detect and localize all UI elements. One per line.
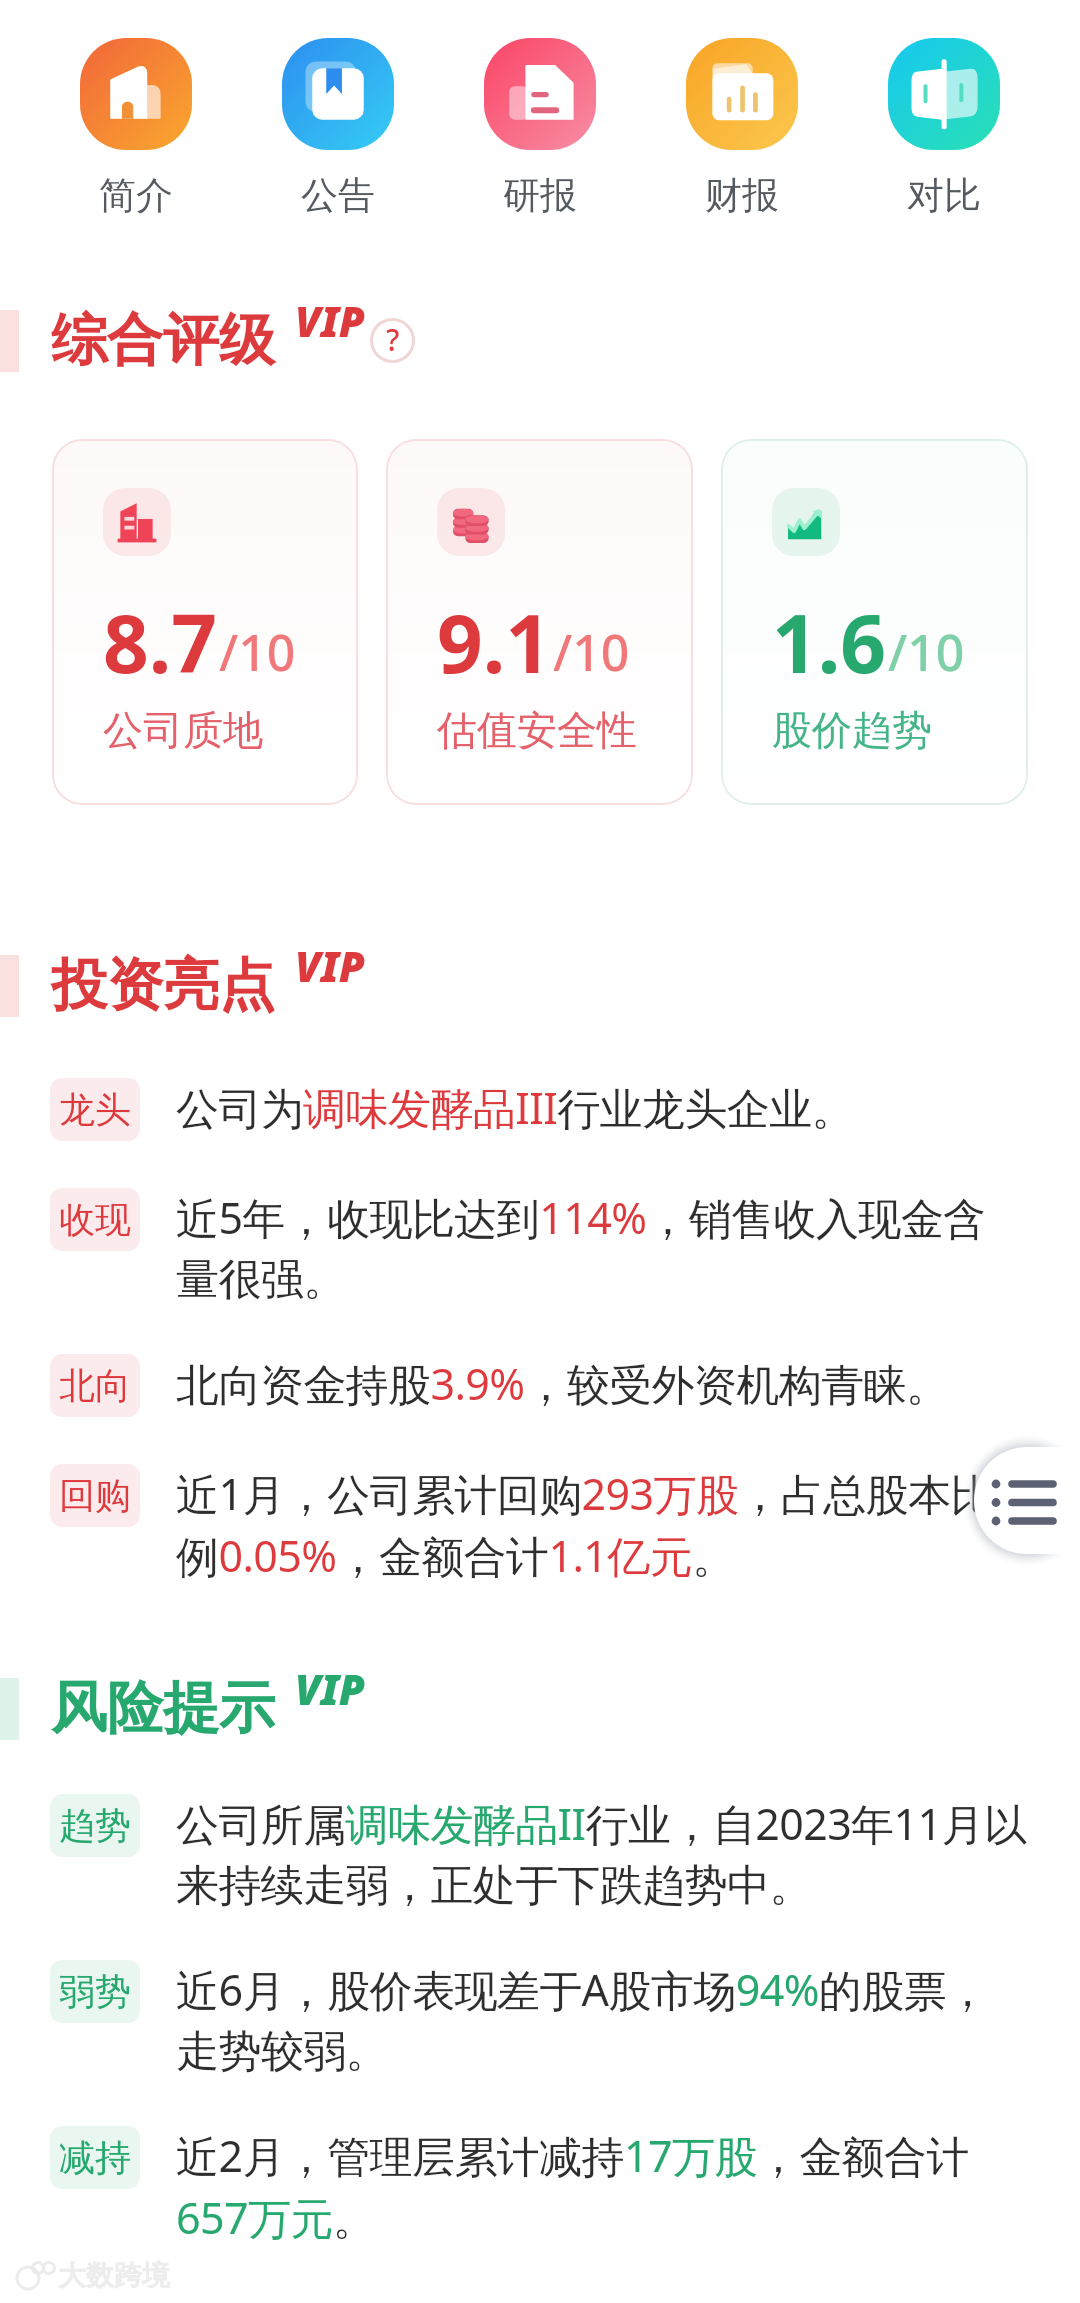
staticText: 风险提示 bbox=[51, 1673, 275, 1744]
staticText: 估值安全性 bbox=[437, 705, 637, 755]
staticText: 近1月，公司累计回购293万股，占总股本比 例0.05%，金额合计1.1亿元。 bbox=[176, 1464, 993, 1585]
staticText: /10 bbox=[553, 618, 630, 686]
button[interactable]: 对比 bbox=[888, 38, 1000, 219]
button[interactable]: 8.7 bbox=[52, 439, 358, 805]
button[interactable]: 弱势 bbox=[50, 1960, 1066, 2079]
button[interactable]: 龙头 bbox=[50, 1078, 1066, 1141]
staticText: /10 bbox=[219, 618, 296, 686]
staticText: 公司质地 bbox=[103, 705, 263, 755]
staticText: 近5年，收现比达到114%，销售收入现金含 量很强。 bbox=[176, 1188, 986, 1307]
staticText: 龙头 bbox=[59, 1087, 131, 1132]
button[interactable]: 北向 bbox=[50, 1354, 1066, 1417]
staticText: 公司所属调味发酵品II行业，自2023年11月以 来持续走弱，正处于下跌趋势中。 bbox=[176, 1794, 1027, 1913]
staticText: 北向 bbox=[59, 1363, 131, 1408]
button[interactable]: 回购 bbox=[50, 1464, 1066, 1585]
button[interactable]: 简介 bbox=[80, 38, 192, 219]
staticText: 9.1 bbox=[437, 587, 551, 696]
button[interactable]: 趋势 bbox=[50, 1794, 1066, 1913]
staticText: 趋势 bbox=[59, 1803, 131, 1848]
button[interactable]: Help bbox=[370, 318, 415, 363]
button[interactable]: 公告 bbox=[282, 38, 394, 219]
button[interactable]: 9.1 bbox=[386, 439, 693, 805]
staticText: 收现 bbox=[59, 1197, 131, 1242]
staticText: VIP bbox=[295, 292, 365, 349]
staticText: VIP bbox=[295, 1660, 365, 1717]
button[interactable]: Menu bbox=[974, 1447, 1080, 1554]
staticText: VIP bbox=[295, 937, 365, 994]
button[interactable]: 收现 bbox=[50, 1188, 1066, 1307]
button[interactable]: 研报 bbox=[484, 38, 596, 219]
staticText: 对比 bbox=[907, 172, 981, 219]
staticText: 北向资金持股3.9%，较受外资机构青睐。 bbox=[176, 1354, 949, 1413]
staticText: 股价趋势 bbox=[772, 705, 932, 755]
staticText: /10 bbox=[888, 618, 965, 686]
button[interactable]: 减持 bbox=[50, 2126, 1066, 2247]
staticText: 回购 bbox=[59, 1473, 131, 1518]
staticText: 综合评级 bbox=[51, 305, 275, 376]
staticText: ? bbox=[386, 319, 400, 360]
staticText: 减持 bbox=[59, 2135, 131, 2180]
staticText: 弱势 bbox=[59, 1969, 131, 2014]
staticText: 公告 bbox=[301, 172, 375, 219]
staticText: 投资亮点 bbox=[51, 950, 275, 1021]
staticText: 近2月，管理层累计减持17万股，金额合计 657万元。 bbox=[176, 2126, 969, 2247]
staticText: 8.7 bbox=[103, 587, 217, 696]
staticText: 研报 bbox=[503, 172, 577, 219]
staticText: 简介 bbox=[99, 172, 173, 219]
staticText: 大数跨境 bbox=[58, 2258, 170, 2293]
staticText: 近6月，股价表现差于A股市场94%的股票， 走势较弱。 bbox=[176, 1960, 989, 2079]
staticText: 财报 bbox=[705, 172, 779, 219]
button[interactable]: 财报 bbox=[686, 38, 798, 219]
staticText: 1.6 bbox=[772, 587, 886, 696]
staticText: 公司为调味发酵品III行业龙头企业。 bbox=[176, 1078, 854, 1137]
button[interactable]: 1.6 bbox=[721, 439, 1028, 805]
